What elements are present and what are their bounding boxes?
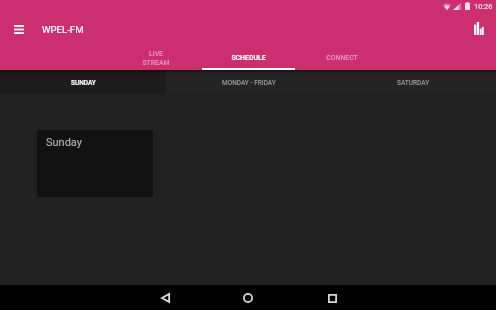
staticText: CONNECT bbox=[326, 54, 358, 62]
staticText: MONDAY - FRIDAY bbox=[222, 79, 276, 87]
staticText: SATURDAY bbox=[397, 79, 430, 87]
staticText: SCHEDULE bbox=[231, 54, 266, 62]
button[interactable]: Statistics bbox=[464, 13, 494, 43]
staticText: Sunday bbox=[46, 136, 82, 149]
button[interactable]: SUNDAY bbox=[0, 70, 166, 94]
button[interactable]: SCHEDULE bbox=[202, 44, 295, 70]
button[interactable]: Sunday bbox=[37, 130, 153, 197]
button[interactable]: MONDAY - FRIDAY bbox=[166, 70, 331, 94]
button[interactable]: SATURDAY bbox=[331, 70, 496, 94]
staticText: WPEL-FM bbox=[42, 24, 84, 35]
button[interactable]: Home bbox=[238, 288, 258, 308]
button[interactable]: Back bbox=[155, 288, 175, 308]
button[interactable]: CONNECT bbox=[295, 44, 388, 70]
staticText: LIVE STREAM bbox=[142, 50, 170, 66]
button[interactable]: LIVE STREAM bbox=[109, 44, 202, 70]
staticText: SUNDAY bbox=[71, 79, 96, 87]
button[interactable]: Recent apps bbox=[322, 288, 342, 308]
staticText: 10:26 bbox=[474, 2, 493, 11]
button[interactable]: Open navigation menu bbox=[4, 14, 34, 44]
